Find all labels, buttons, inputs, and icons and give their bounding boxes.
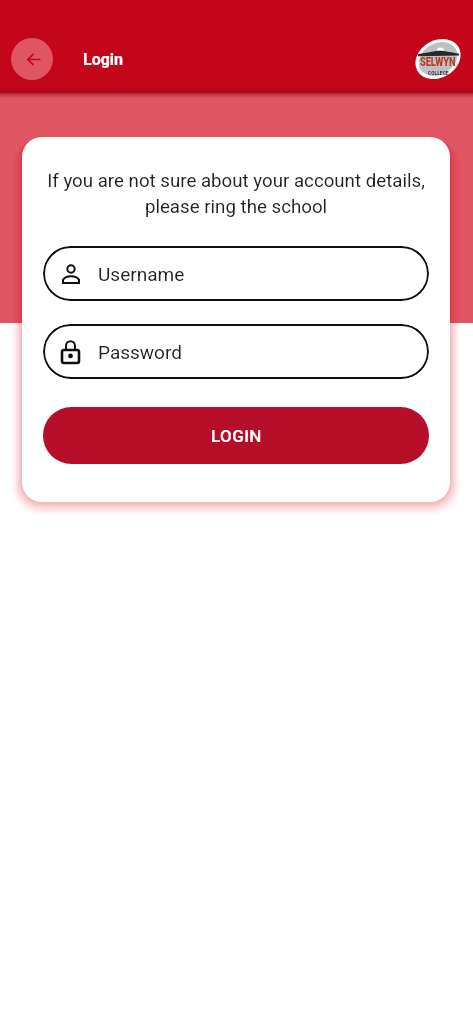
button[interactable]: Username: [43, 246, 429, 301]
button[interactable]: Password: [43, 324, 429, 379]
staticText: COLLEGE: [428, 69, 449, 76]
staticText: Password: [98, 341, 182, 363]
staticText: SELWYN: [420, 55, 456, 69]
staticText: Login: [83, 50, 124, 69]
staticText: If you are not sure about your account d…: [43, 170, 429, 218]
button[interactable]: Back: [11, 38, 53, 80]
staticText: LOGIN: [211, 426, 262, 446]
button[interactable]: LOGIN: [43, 407, 429, 464]
staticText: Username: [98, 263, 185, 285]
